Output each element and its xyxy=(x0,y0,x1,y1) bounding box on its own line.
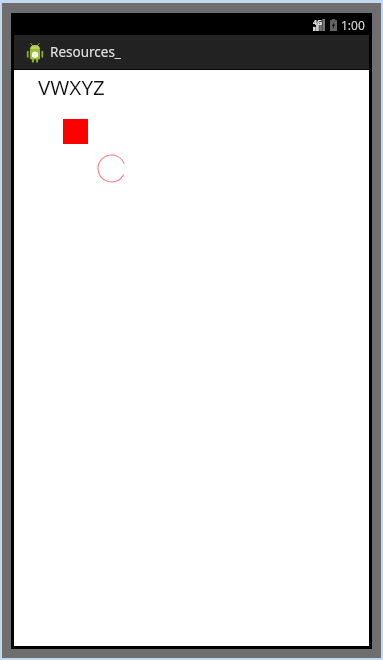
staticText: Resources_ xyxy=(50,43,121,61)
other: Battery charging xyxy=(330,19,337,31)
other: Mobile signal 4G xyxy=(313,19,325,31)
staticText: 4G xyxy=(313,18,323,28)
staticText: VWXYZ xyxy=(38,73,105,101)
button[interactable]: Resources_ xyxy=(14,35,129,69)
staticText: 1:00 xyxy=(341,17,365,33)
